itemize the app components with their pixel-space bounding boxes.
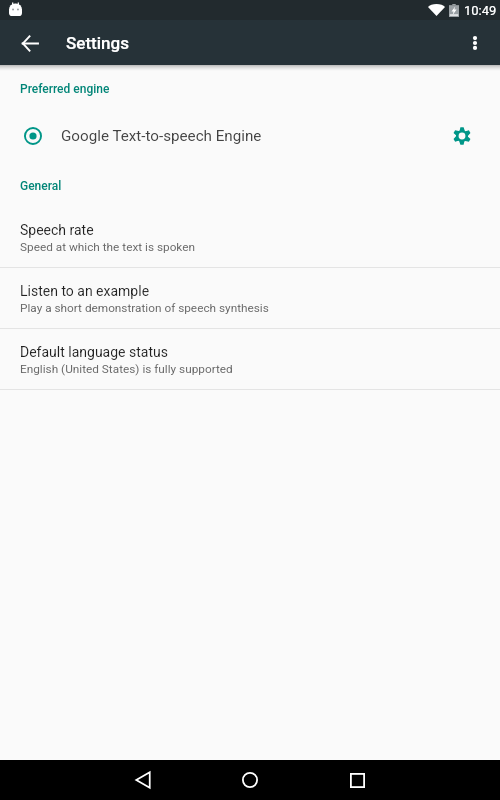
staticText: Google Text-to-speech Engine (61, 127, 262, 145)
staticText: English (United States) is fully support… (20, 362, 233, 376)
staticText: Settings (66, 33, 129, 53)
staticText: Play a short demonstration of speech syn… (20, 301, 269, 315)
staticText: Speech rate (20, 222, 94, 238)
button[interactable]: Speech rate (0, 207, 500, 267)
button[interactable]: More options (453, 21, 497, 65)
staticText: Listen to an example (20, 283, 150, 299)
staticText: 10:49 (464, 3, 497, 18)
button[interactable]: Navigate up (8, 21, 52, 65)
button[interactable]: Back (117, 760, 169, 800)
button[interactable]: Engine settings (443, 120, 481, 152)
button[interactable]: Listen to an example (0, 268, 500, 328)
button[interactable]: Recent apps (331, 760, 383, 800)
button[interactable]: Home (224, 760, 276, 800)
button[interactable]: Default language status (0, 329, 500, 389)
staticText: General (20, 179, 62, 193)
button[interactable]: Google Text-to-speech Engine (0, 120, 500, 152)
staticText: Preferred engine (20, 82, 110, 96)
staticText: Speed at which the text is spoken (20, 240, 196, 254)
staticText: Default language status (20, 344, 168, 360)
